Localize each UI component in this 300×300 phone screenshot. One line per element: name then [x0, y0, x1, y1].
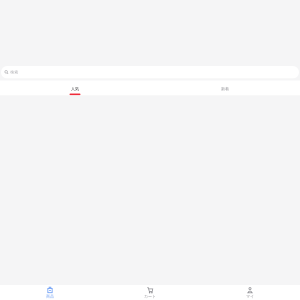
button[interactable]: 検索 [0, 66, 300, 78]
staticText: 人気 [71, 86, 79, 91]
button[interactable]: 新着 [150, 80, 300, 95]
staticText: マイ [246, 294, 254, 299]
button[interactable]: 商品 [0, 287, 100, 299]
button[interactable]: カート [100, 287, 200, 299]
button[interactable]: 人気 [0, 80, 150, 95]
button[interactable]: マイ [200, 287, 300, 299]
staticText: 新着 [221, 86, 229, 91]
staticText: 商品 [46, 294, 54, 299]
staticText: カート [144, 294, 156, 299]
staticText: 検索 [10, 70, 18, 75]
